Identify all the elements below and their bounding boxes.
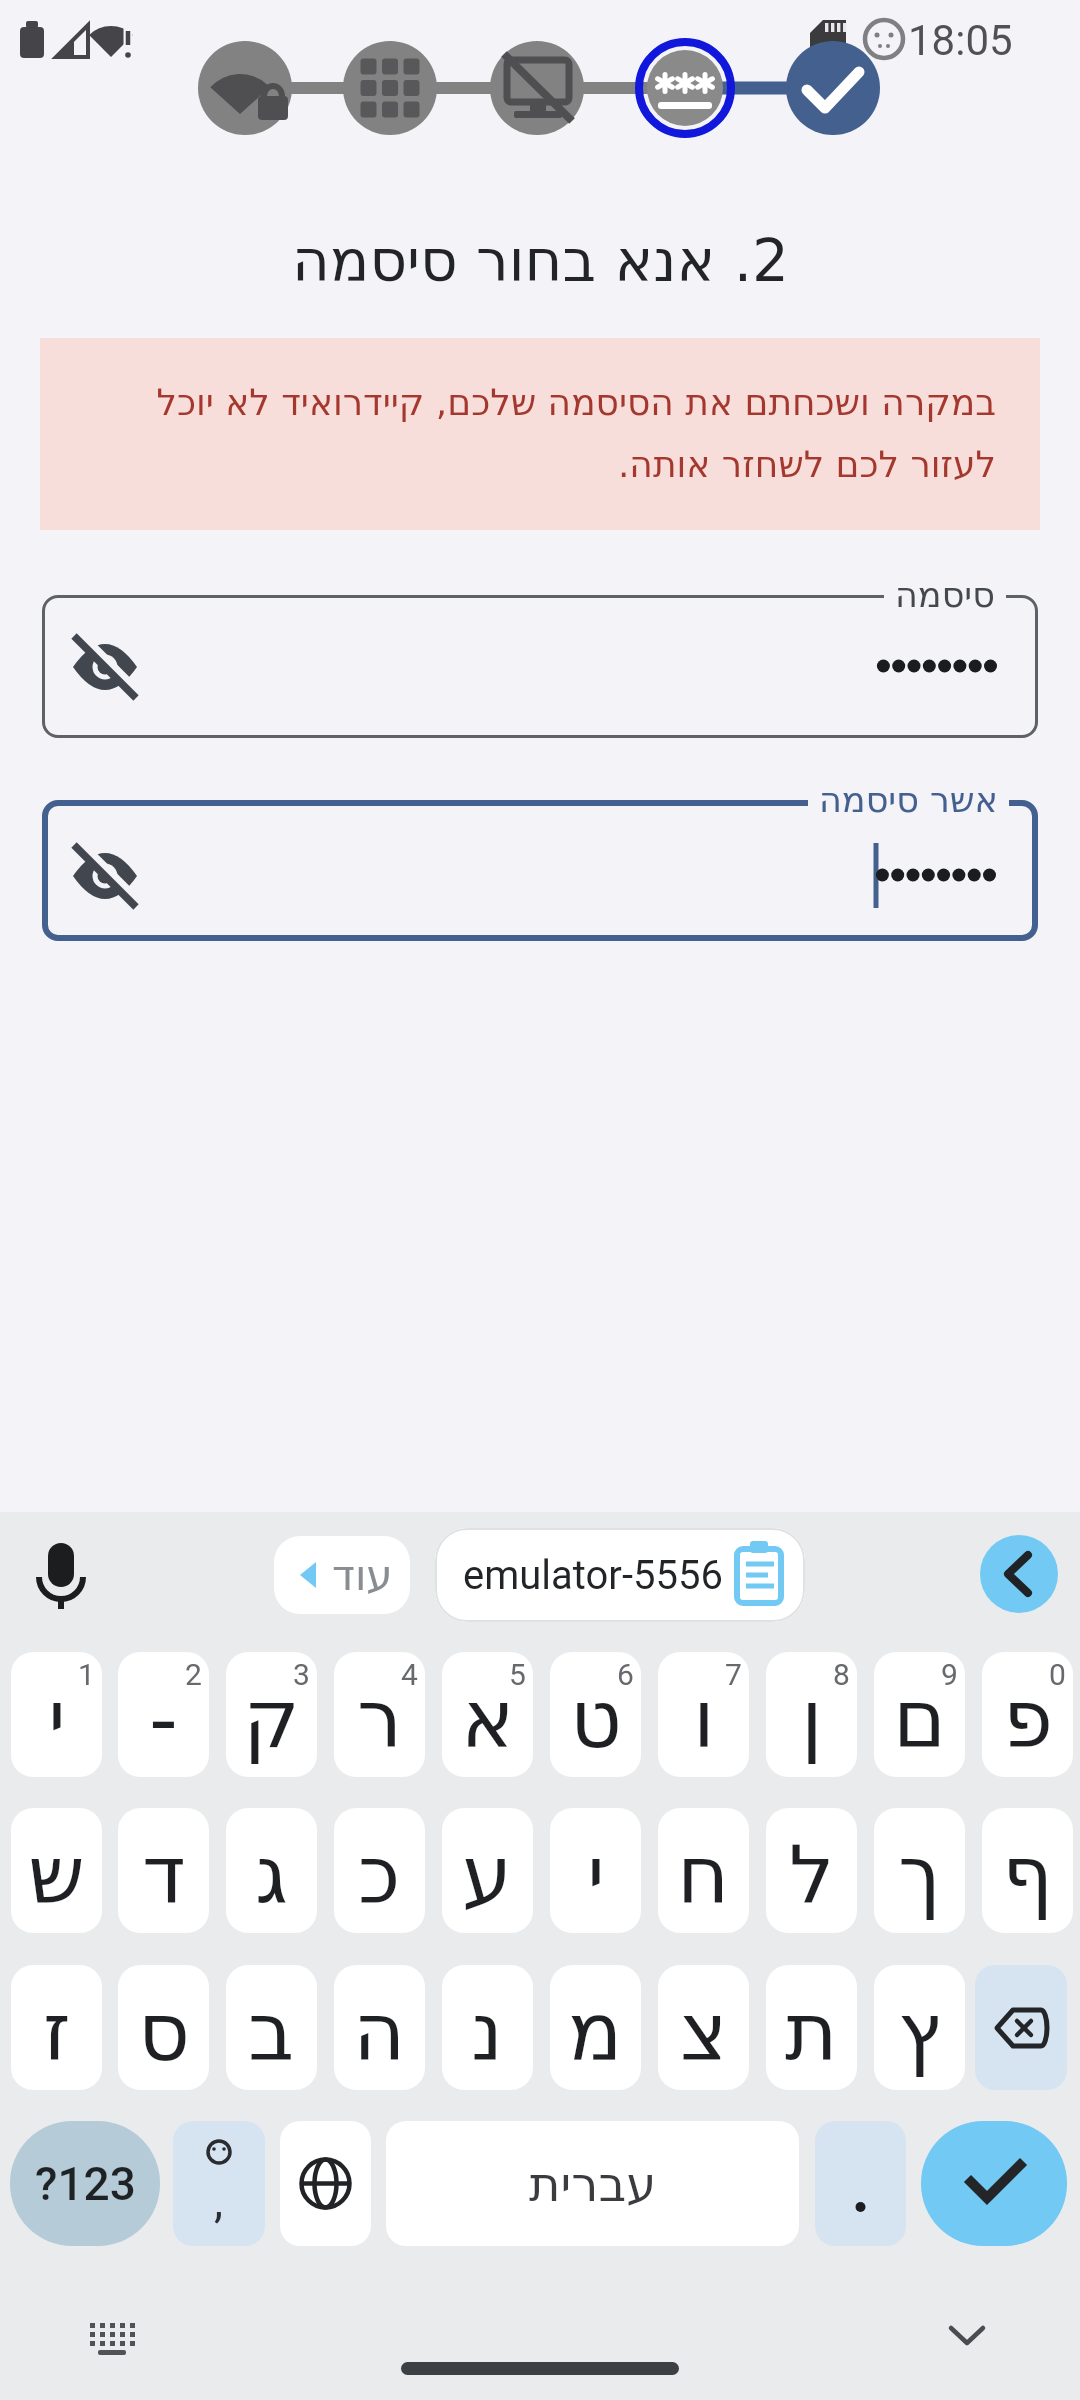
button[interactable] [280,2121,371,2246]
staticText: emulator-5556 [463,1552,723,1599]
button[interactable] [815,2121,906,2246]
staticText: 6 [617,1657,634,1692]
button[interactable]: ף [982,1808,1073,1933]
button[interactable] [42,800,1038,941]
button[interactable]: י [550,1808,641,1933]
staticText: ם [893,1673,947,1766]
button[interactable]: א [442,1652,533,1777]
button[interactable]: ג [226,1808,317,1933]
staticText: מ [568,1986,623,2079]
button[interactable] [921,2121,1067,2246]
button[interactable]: ר [334,1652,425,1777]
button[interactable]: ח [658,1808,749,1933]
staticText: ץ [898,1986,942,2079]
staticText: ח [677,1829,730,1922]
staticText: ש [28,1829,85,1922]
button[interactable]: ט [550,1652,641,1777]
button[interactable]: ת [766,1965,857,2090]
staticText: ע [462,1829,513,1922]
button[interactable]: צ [658,1965,749,2090]
staticText: 4 [401,1657,418,1692]
staticText: כ [358,1829,401,1922]
button[interactable] [30,1540,94,1610]
button[interactable]: נ [442,1965,533,2090]
button[interactable]: כ [334,1808,425,1933]
staticText: ז [43,1986,71,2079]
button[interactable] [69,631,141,703]
button[interactable] [69,840,141,912]
staticText: עברית [529,2156,657,2212]
staticText: , [214,2174,224,2228]
staticText: 18:05 [908,16,1013,62]
staticText: ר [357,1673,403,1766]
staticText: 7 [725,1657,742,1692]
button[interactable]: ק [226,1652,317,1777]
staticText: - [149,1673,178,1766]
staticText: 0 [1049,1657,1066,1692]
button[interactable]: ו [658,1652,749,1777]
button[interactable]: emulator-5556 [435,1528,805,1622]
staticText: ו [693,1673,715,1766]
staticText: ה [353,1986,406,2079]
button[interactable] [931,2301,1003,2373]
button[interactable]: ז [11,1965,102,2090]
staticText: י [587,1829,605,1922]
button[interactable]: ד [118,1808,209,1933]
button[interactable]: עוד [274,1536,410,1614]
staticText: ף [1002,1829,1054,1922]
staticText: במקרה ושכחתם את הסיסמה שלכם, קיידרואיד ל… [156,382,996,486]
button[interactable]: ל [766,1808,857,1933]
button[interactable]: - [118,1652,209,1777]
staticText: ל [789,1829,835,1922]
staticText: 9 [941,1657,958,1692]
staticText: 2. אנא בחור סיסמה [292,227,789,295]
button[interactable]: פ [982,1652,1073,1777]
staticText: 3 [293,1657,310,1692]
button[interactable] [76,2301,148,2373]
button[interactable]: מ [550,1965,641,2090]
staticText: י [48,1673,66,1766]
button[interactable]: ע [442,1808,533,1933]
staticText: אשר סיסמה [819,780,998,821]
button[interactable]: י [11,1652,102,1777]
staticText: פ [1003,1673,1053,1766]
staticText: ד [142,1829,186,1922]
staticText: ?123 [35,2157,136,2211]
staticText: נ [471,1986,504,2079]
staticText: 8 [833,1657,850,1692]
button[interactable]: ך [874,1808,965,1933]
staticText: 2 [185,1657,202,1692]
button[interactable]: ב [226,1965,317,2090]
staticText: סיסמה [895,575,995,616]
button[interactable]: ש [11,1808,102,1933]
staticText: ב [248,1986,295,2079]
button[interactable]: ן [766,1652,857,1777]
button[interactable]: ?123 [10,2121,160,2246]
button[interactable] [975,1965,1067,2090]
button[interactable]: , [173,2121,265,2246]
staticText: ך [898,1829,941,1922]
staticText: ג [255,1829,288,1922]
staticText: ק [243,1673,300,1766]
button[interactable]: ץ [874,1965,965,2090]
button[interactable]: ה [334,1965,425,2090]
button[interactable]: ם [874,1652,965,1777]
button[interactable] [42,595,1038,738]
staticText: ן [801,1673,823,1766]
staticText: 5 [509,1657,526,1692]
staticText: ת [785,1986,838,2079]
staticText: צ [680,1986,728,2079]
button[interactable] [980,1535,1058,1613]
staticText: ט [570,1673,622,1766]
staticText: א [461,1673,515,1766]
button[interactable]: עברית [386,2121,799,2246]
button[interactable]: ס [118,1965,209,2090]
staticText: ס [138,1986,190,2079]
staticText: 1 [78,1657,95,1692]
staticText: עוד [332,1551,393,1600]
